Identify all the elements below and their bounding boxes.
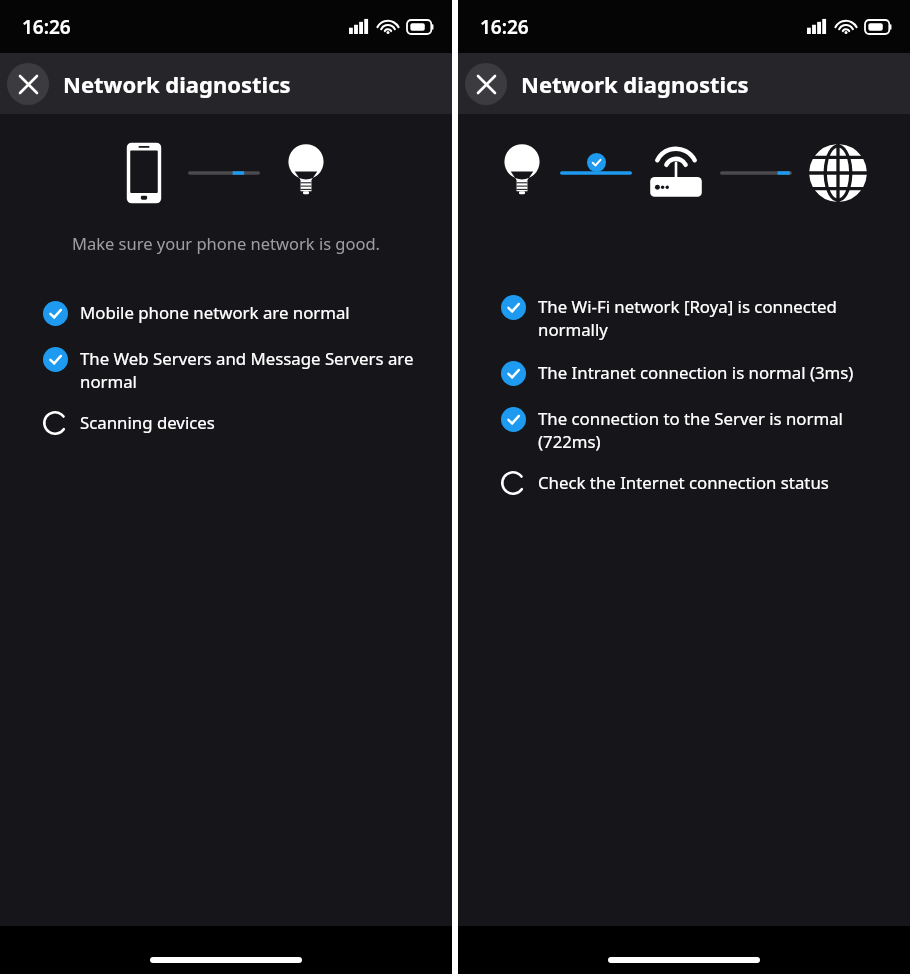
button[interactable]: Check the Internet connection status bbox=[458, 466, 910, 498]
button[interactable]: Scanning devices bbox=[0, 406, 452, 438]
button[interactable]: The Web Servers and Message Servers are … bbox=[0, 342, 452, 394]
staticText: Check the Internet connection status bbox=[538, 471, 884, 494]
button[interactable]: Close bbox=[465, 63, 507, 105]
staticText: 16:26 bbox=[480, 14, 529, 40]
staticText: The Intranet connection is normal (3ms) bbox=[538, 361, 884, 384]
button[interactable]: Mobile phone network are normal bbox=[0, 296, 452, 328]
staticText: Make sure your phone network is good. bbox=[0, 232, 452, 254]
button[interactable]: The Wi-Fi network [Roya] is connected no… bbox=[458, 290, 910, 342]
staticText: Network diagnostics bbox=[63, 69, 291, 99]
staticText: 16:26 bbox=[22, 14, 71, 40]
staticText: The connection to the Server is normal (… bbox=[538, 407, 884, 453]
staticText: Mobile phone network are normal bbox=[80, 301, 426, 324]
staticText: Scanning devices bbox=[80, 411, 426, 434]
button[interactable]: Close bbox=[7, 63, 49, 105]
staticText: Network diagnostics bbox=[521, 69, 749, 99]
staticText: The Web Servers and Message Servers are … bbox=[80, 347, 426, 393]
button[interactable]: The Intranet connection is normal (3ms) bbox=[458, 356, 910, 388]
button[interactable]: The connection to the Server is normal (… bbox=[458, 402, 910, 454]
staticText: The Wi-Fi network [Roya] is connected no… bbox=[538, 295, 884, 341]
